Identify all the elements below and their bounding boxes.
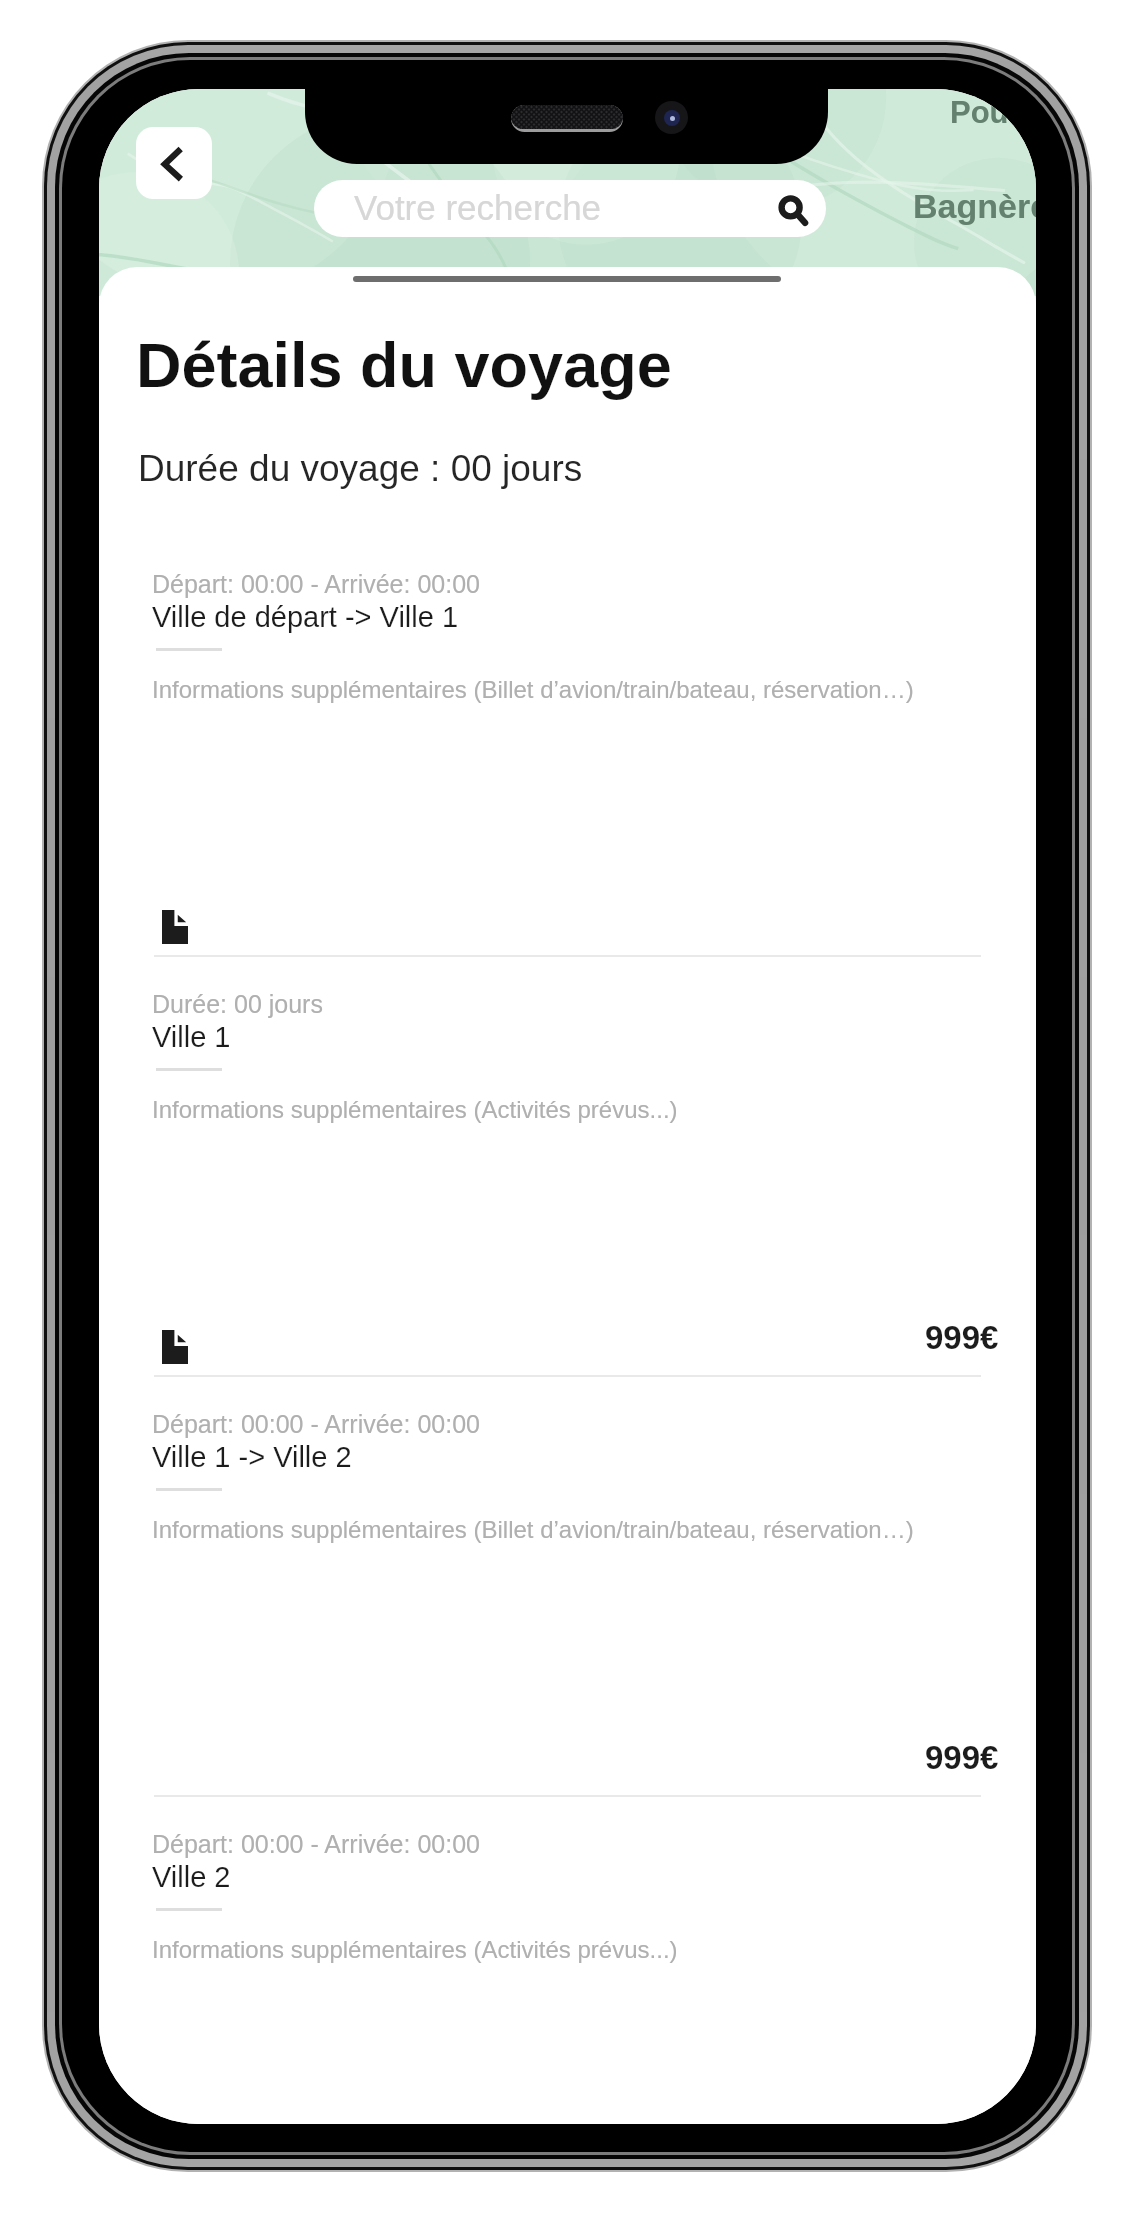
button[interactable]: Départ: 00:00 - Arrivée: 00:00 bbox=[99, 570, 1036, 990]
button[interactable]: Durée: 00 jours bbox=[99, 990, 1036, 1410]
staticText: Durée: 00 jours bbox=[152, 990, 323, 1018]
staticText: Ville 1 bbox=[152, 1021, 231, 1053]
staticText: Ville 2 bbox=[152, 1861, 231, 1893]
staticText: Informations supplémentaires (Activités … bbox=[152, 1936, 678, 1963]
button[interactable]: Départ: 00:00 - Arrivée: 00:00 bbox=[99, 1830, 1036, 2124]
staticText: Départ: 00:00 - Arrivée: 00:00 bbox=[152, 570, 480, 598]
staticText: Ville de départ -> Ville 1 bbox=[152, 601, 459, 633]
staticText: Votre recherche bbox=[354, 188, 602, 227]
staticText: Ville 1 -> Ville 2 bbox=[152, 1441, 352, 1473]
staticText: Départ: 00:00 - Arrivée: 00:00 bbox=[152, 1410, 480, 1438]
staticText: Informations supplémentaires (Activités … bbox=[152, 1096, 678, 1123]
staticText: Départ: 00:00 - Arrivée: 00:00 bbox=[152, 1830, 480, 1858]
button[interactable]: Départ: 00:00 - Arrivée: 00:00 bbox=[99, 1410, 1036, 1830]
staticText: Informations supplémentaires (Billet d’a… bbox=[152, 1516, 914, 1543]
button[interactable]: Retour bbox=[136, 127, 212, 199]
button[interactable]: Votre recherche bbox=[314, 180, 826, 237]
staticText: Informations supplémentaires (Billet d’a… bbox=[152, 676, 914, 703]
staticText: 999€ bbox=[925, 1739, 999, 1776]
staticText: Bagnères bbox=[913, 187, 1036, 225]
staticText: Durée du voyage : 00 jours bbox=[138, 448, 583, 489]
staticText: Pou bbox=[950, 95, 1009, 130]
staticText: 999€ bbox=[925, 1319, 999, 1356]
staticText: Détails du voyage bbox=[136, 330, 672, 400]
